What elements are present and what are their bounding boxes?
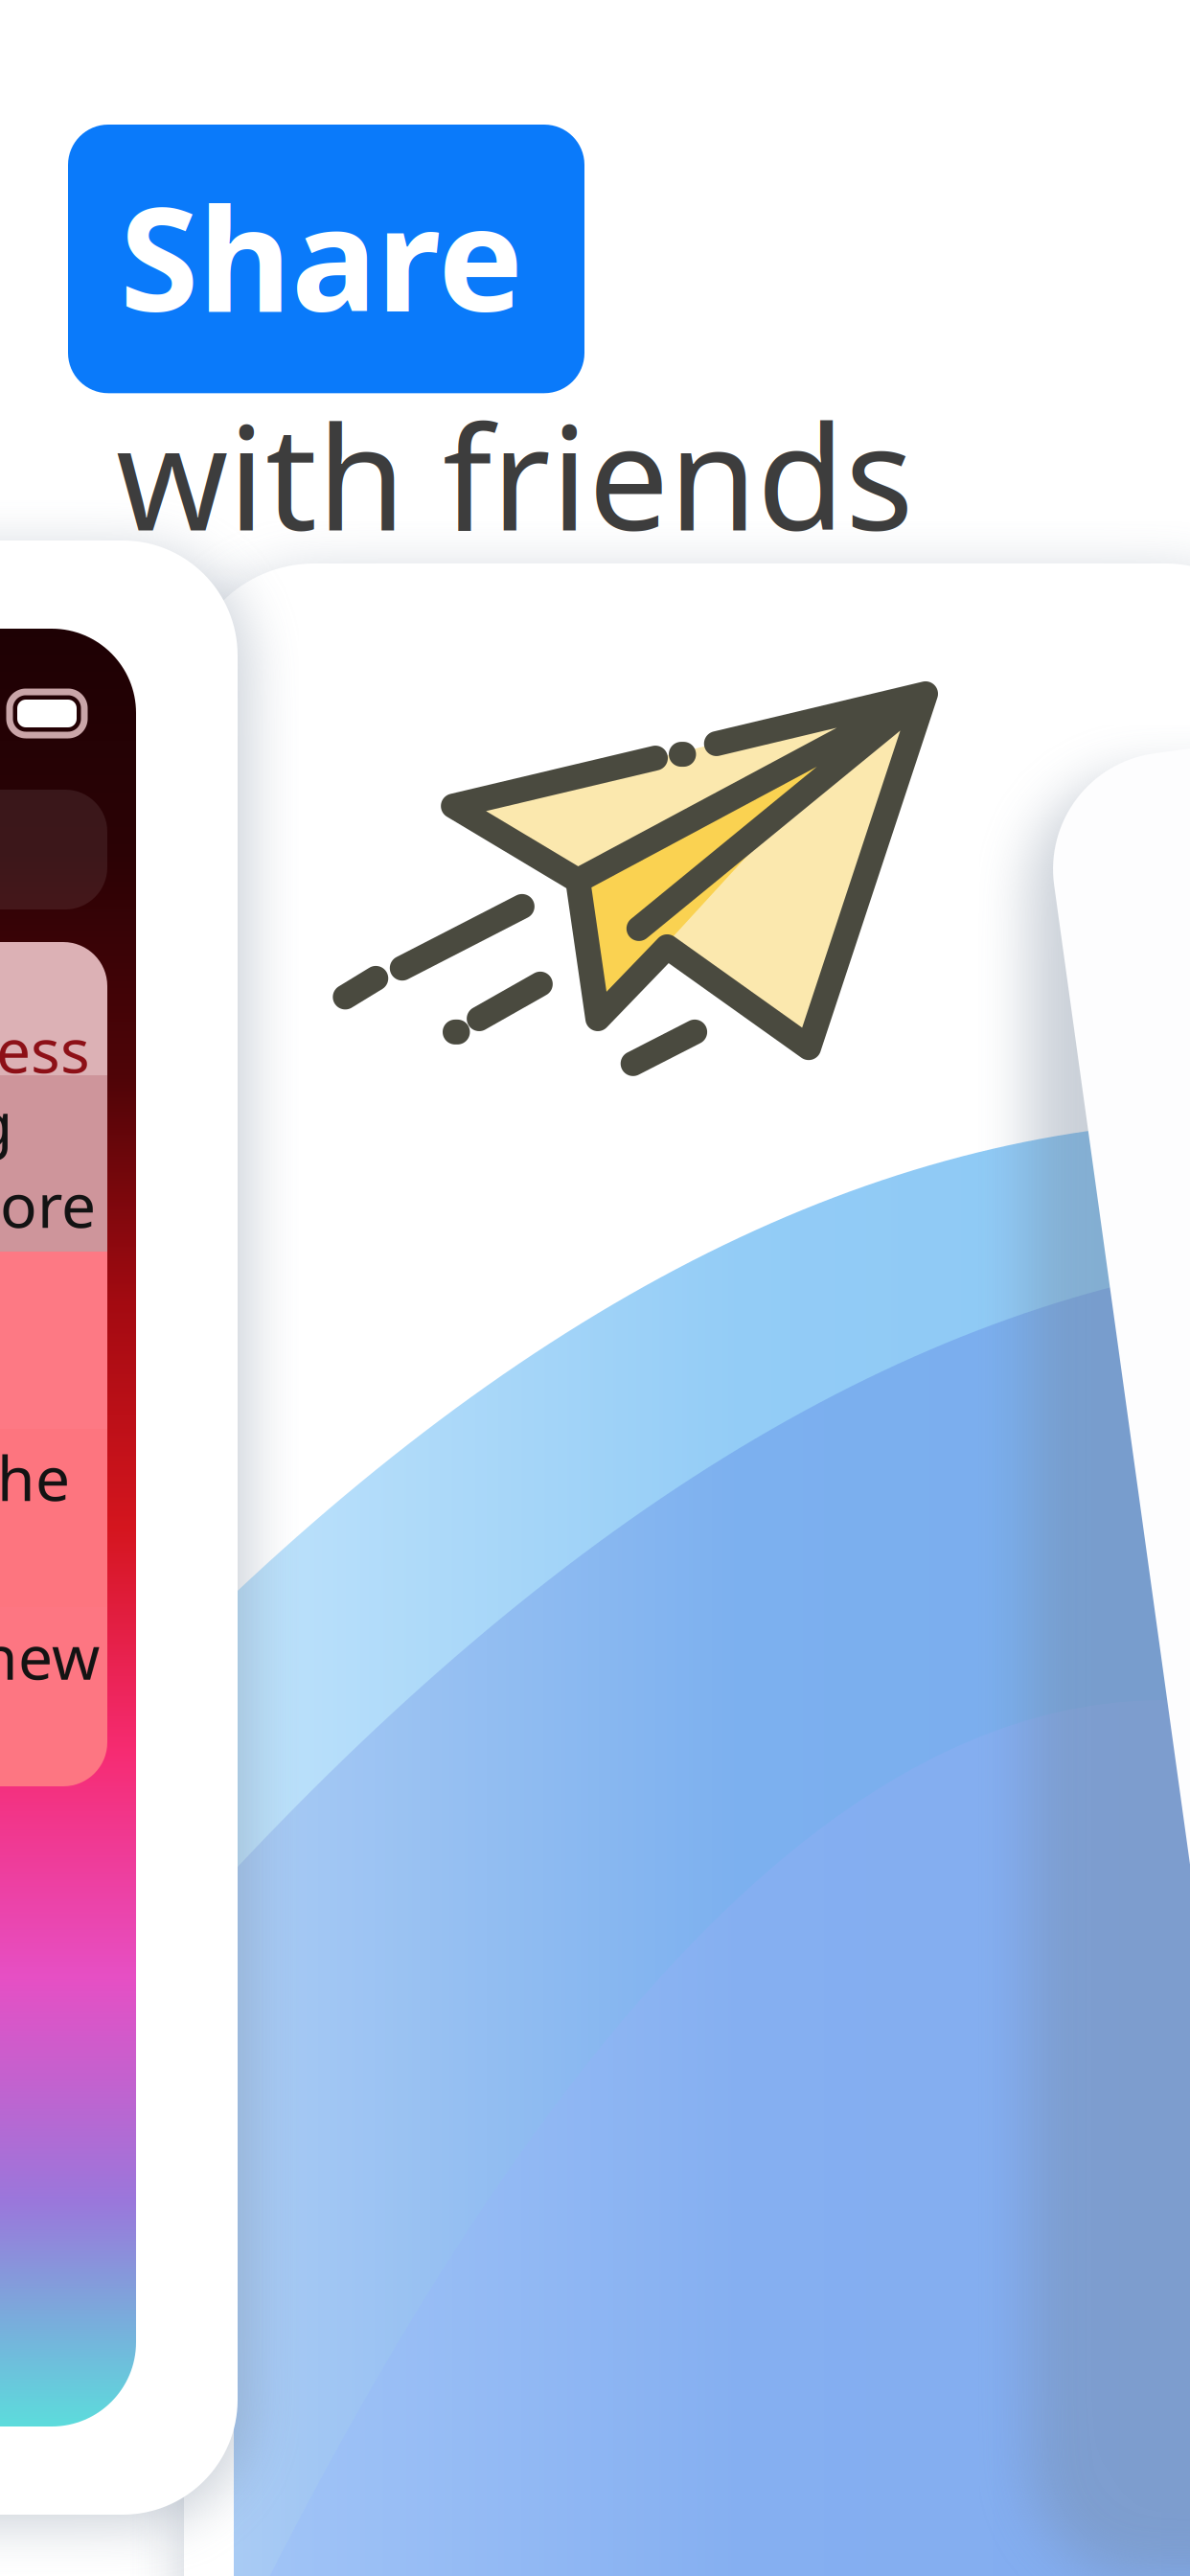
staticText: Share [120, 161, 523, 351]
staticText: Cut off the Honey [0, 1437, 70, 1599]
staticText: Sleeping much More [0, 1082, 96, 1245]
staticText: Build a new Lifestyle [0, 1615, 100, 1778]
staticText: Start Eating Less [0, 927, 90, 1090]
staticText: with friends [116, 380, 914, 570]
